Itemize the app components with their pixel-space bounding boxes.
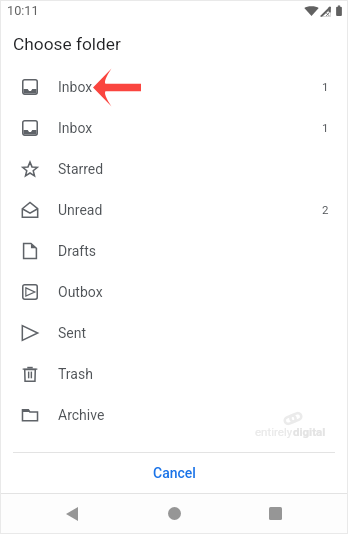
button[interactable]: Cancel (0, 453, 348, 493)
button[interactable]: Outbox (0, 271, 348, 312)
button[interactable]: Inbox (0, 107, 348, 148)
staticText: 2 (322, 203, 329, 216)
staticText: Sent (58, 325, 87, 341)
staticText: Trash (58, 366, 93, 382)
staticText: Cancel (153, 465, 196, 481)
button[interactable]: Home (144, 493, 204, 534)
button[interactable]: Trash (0, 353, 348, 394)
button[interactable]: Archive (0, 394, 348, 435)
button[interactable]: Drafts (0, 230, 348, 271)
staticText: entirely (255, 425, 293, 438)
staticText: 1 (322, 121, 329, 134)
staticText: Archive (58, 407, 105, 423)
button[interactable]: Back (42, 493, 102, 534)
staticText: Starred (58, 161, 104, 177)
staticText: 10:11 (7, 3, 39, 18)
button[interactable]: Unread (0, 189, 348, 230)
staticText: 1 (322, 80, 329, 93)
button[interactable]: Sent (0, 312, 348, 353)
staticText: Drafts (58, 243, 96, 259)
staticText: Outbox (58, 284, 103, 300)
staticText: Inbox (58, 79, 93, 95)
staticText: Choose folder (13, 34, 121, 54)
button[interactable]: Recent apps (245, 493, 305, 534)
staticText: Unread (58, 202, 103, 218)
staticText: Inbox (58, 120, 93, 136)
button[interactable]: Starred (0, 148, 348, 189)
button[interactable]: Inbox (0, 66, 348, 107)
staticText: digital (293, 425, 326, 438)
